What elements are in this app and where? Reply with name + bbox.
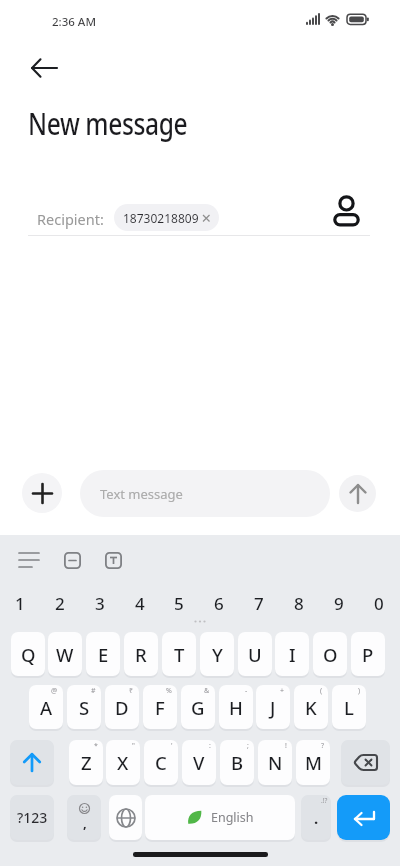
button[interactable]: D xyxy=(105,685,139,729)
staticText: + xyxy=(280,686,285,696)
button[interactable]: T xyxy=(162,632,196,676)
button[interactable] xyxy=(22,48,66,88)
staticText: % xyxy=(166,686,172,696)
staticText: I xyxy=(289,642,296,667)
button[interactable]: S xyxy=(67,685,101,729)
staticText: S xyxy=(79,695,90,720)
button[interactable] xyxy=(339,475,376,512)
button[interactable]: English xyxy=(145,795,295,840)
staticText: 8 xyxy=(294,592,304,615)
button[interactable]: 6 xyxy=(201,586,237,620)
staticText: Z xyxy=(81,750,92,775)
staticText: Text message xyxy=(100,485,183,503)
staticText: H xyxy=(229,695,243,720)
button[interactable]: , xyxy=(67,795,101,840)
button[interactable]: J xyxy=(256,685,290,729)
button[interactable] xyxy=(12,545,46,575)
staticText: " xyxy=(132,741,135,751)
staticText: 5 xyxy=(174,592,184,615)
button[interactable] xyxy=(96,545,130,575)
button[interactable]: B xyxy=(220,740,254,785)
staticText: ( xyxy=(320,686,323,696)
button[interactable] xyxy=(55,545,89,575)
staticText: 0 xyxy=(374,592,384,615)
staticText: Y xyxy=(212,642,223,667)
staticText: * xyxy=(94,741,98,751)
staticText: L xyxy=(344,695,354,720)
button[interactable]: X xyxy=(106,740,140,785)
staticText: B xyxy=(231,750,244,775)
button[interactable]: Text message xyxy=(80,470,330,517)
button[interactable] xyxy=(22,473,62,513)
staticText: Q xyxy=(21,642,36,667)
button[interactable] xyxy=(328,192,364,228)
staticText: 9 xyxy=(334,592,344,615)
button[interactable]: ?123 xyxy=(10,795,54,840)
staticText: 1 xyxy=(15,592,25,615)
staticText: V xyxy=(193,750,205,775)
button[interactable]: C xyxy=(144,740,178,785)
button[interactable]: L xyxy=(332,685,366,729)
button[interactable]: E xyxy=(86,632,120,676)
button[interactable]: 2 xyxy=(42,586,78,620)
button[interactable]: 9 xyxy=(321,586,357,620)
staticText: English xyxy=(211,809,254,826)
staticText: E xyxy=(98,642,109,667)
button[interactable]: I xyxy=(275,632,309,676)
staticText: ₹ xyxy=(129,686,134,696)
staticText: Recipient: xyxy=(37,209,104,229)
button[interactable]: 4 xyxy=(122,586,158,620)
button[interactable]: 5 xyxy=(161,586,197,620)
staticText: @ xyxy=(51,686,58,696)
staticText: ; xyxy=(247,741,249,751)
button[interactable]: O xyxy=(313,632,347,676)
button[interactable]: 8 xyxy=(281,586,317,620)
staticText: O xyxy=(323,642,338,667)
button[interactable] xyxy=(337,795,390,840)
staticText: .!? xyxy=(321,796,328,805)
button[interactable]: P xyxy=(351,632,385,676)
staticText: New message xyxy=(28,101,188,144)
button[interactable] xyxy=(109,795,142,840)
button[interactable]: 7 xyxy=(241,586,277,620)
staticText: N xyxy=(268,750,283,775)
button[interactable]: K xyxy=(294,685,328,729)
button[interactable]: V xyxy=(182,740,216,785)
button[interactable]: M xyxy=(296,740,330,785)
button[interactable]: . xyxy=(301,795,331,840)
button[interactable] xyxy=(341,740,390,785)
button[interactable]: A xyxy=(29,685,63,729)
staticText: T xyxy=(174,642,185,667)
button[interactable]: Z xyxy=(69,740,103,785)
staticText: M xyxy=(305,750,322,775)
button[interactable]: H xyxy=(219,685,253,729)
button[interactable]: W xyxy=(48,632,82,676)
button[interactable]: Q xyxy=(11,632,45,676)
button[interactable]: 18730218809 xyxy=(114,204,219,231)
staticText: - xyxy=(245,686,248,696)
button[interactable]: 3 xyxy=(82,586,118,620)
button[interactable]: R xyxy=(124,632,158,676)
staticText: D xyxy=(115,695,129,720)
staticText: P xyxy=(362,642,374,667)
button[interactable]: G xyxy=(181,685,215,729)
staticText: 7 xyxy=(254,592,264,615)
staticText: 4 xyxy=(135,592,145,615)
staticText: U xyxy=(248,642,262,667)
staticText: 18730218809 xyxy=(123,210,199,226)
button[interactable]: 1 xyxy=(2,586,38,620)
staticText: J xyxy=(270,695,276,720)
button[interactable]: F xyxy=(143,685,177,729)
button[interactable]: U xyxy=(238,632,272,676)
staticText: F xyxy=(155,695,165,720)
staticText: 2 xyxy=(55,592,65,615)
staticText: G xyxy=(191,695,205,720)
button[interactable] xyxy=(10,740,54,785)
button[interactable]: 0 xyxy=(361,586,397,620)
staticText: R xyxy=(135,642,147,667)
button[interactable]: Y xyxy=(200,632,234,676)
staticText: & xyxy=(204,686,210,696)
button[interactable]: N xyxy=(258,740,292,785)
staticText: ?123 xyxy=(17,808,48,827)
staticText: . xyxy=(314,808,319,828)
